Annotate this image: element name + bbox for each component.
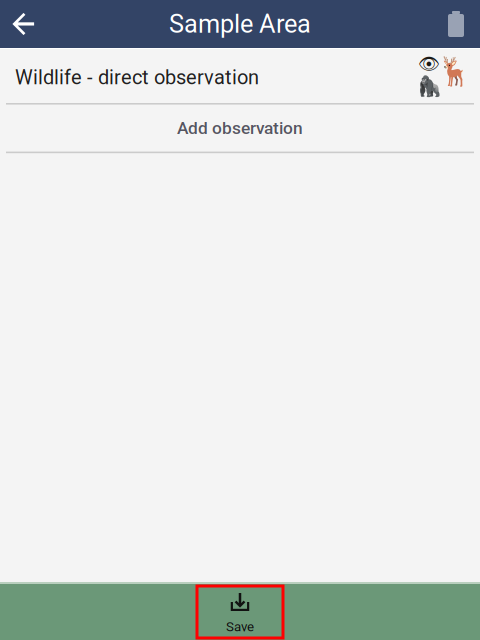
button[interactable]: Save — [197, 586, 283, 638]
staticText: Wildlife - direct observation — [15, 66, 259, 89]
staticText: 👁 — [418, 54, 440, 74]
button[interactable]: Battery status — [432, 0, 480, 48]
staticText: Sample Area — [169, 9, 311, 39]
button[interactable]: Back — [0, 0, 48, 48]
staticText: 🦌 — [437, 55, 472, 87]
staticText: 🦍 — [417, 75, 442, 98]
staticText: Save — [226, 619, 254, 635]
staticText: Add observation — [177, 118, 303, 138]
button[interactable]: Wildlife - direct observation — [0, 49, 480, 103]
button[interactable]: Add observation — [0, 105, 480, 152]
